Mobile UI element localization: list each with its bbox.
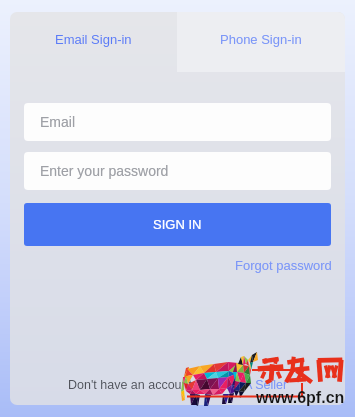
staticText: Don't have an account ? [68,378,203,392]
button[interactable]: Forgot password [235,258,332,273]
button[interactable]: Email Sign-in [10,12,177,72]
staticText: www.6pf.cn [256,389,345,407]
staticText: SIGN IN [153,217,202,232]
staticText: Phone Sign-in [220,32,302,47]
button[interactable]: Phone Sign-in [177,12,345,72]
button[interactable]: SIGN IN [24,203,331,246]
button[interactable]: Be A Seller [226,378,288,392]
button[interactable]: Email [24,103,331,141]
staticText: Email [40,114,76,130]
staticText: Enter your password [40,163,169,179]
staticText: Forgot password [235,258,332,273]
button[interactable]: Enter your password [24,152,331,190]
staticText: Email Sign-in [55,32,132,47]
staticText: Be A Seller [226,378,288,392]
